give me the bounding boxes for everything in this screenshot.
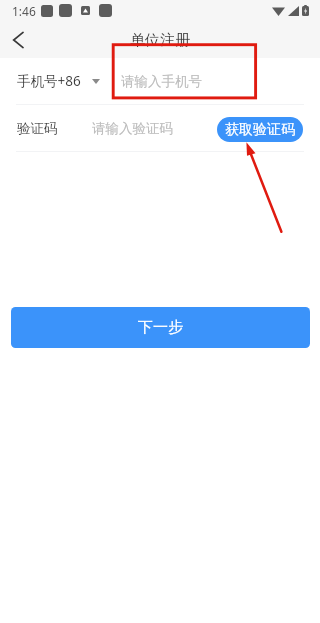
staticText: 请输入验证码 [92,120,173,137]
staticText: 请输入手机号 [121,73,202,90]
staticText: 手机号+86 [17,72,81,90]
button[interactable]: 获取验证码 [217,117,303,142]
staticText: 验证码 [17,120,58,137]
staticText: 下一步 [138,318,183,337]
staticText: 1:46 [12,3,36,19]
staticText: 获取验证码 [225,121,295,139]
staticText: 单位注册 [130,31,190,50]
button[interactable]: Back [4,26,32,54]
button[interactable]: 手机号+86 [17,72,100,90]
button[interactable]: 下一步 [11,307,310,348]
